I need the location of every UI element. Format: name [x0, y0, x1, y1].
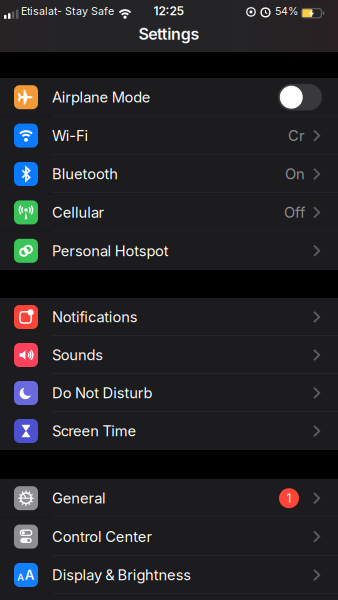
button[interactable]: Sounds [0, 336, 338, 374]
button[interactable]: A [0, 556, 338, 594]
button[interactable]: Notifications [0, 298, 338, 336]
staticText: Personal Hotspot [52, 242, 169, 259]
button[interactable]: General [0, 479, 338, 517]
button[interactable]: Control Center [0, 517, 338, 556]
button[interactable]: Personal Hotspot [0, 232, 338, 270]
staticText: A [25, 567, 35, 583]
button[interactable]: Cellular [0, 193, 338, 232]
button[interactable]: Bluetooth [0, 155, 338, 193]
staticText: Screen Time [52, 422, 136, 440]
staticText: Wi-Fi [52, 127, 89, 144]
button[interactable]: Wi-Fi [0, 116, 338, 155]
staticText: 12:25 [153, 4, 184, 18]
staticText: Do Not Disturb [52, 384, 152, 402]
staticText: General [52, 489, 106, 507]
staticText: Bluetooth [52, 165, 118, 183]
staticText: Airplane Mode [52, 88, 151, 106]
staticText: Sounds [52, 346, 103, 364]
staticText: Display & Brightness [52, 566, 191, 584]
staticText: 54% [275, 5, 298, 17]
button[interactable]: Airplane Mode [278, 84, 322, 110]
staticText: Notifications [52, 308, 138, 326]
button[interactable]: Do Not Disturb [0, 374, 338, 412]
staticText: Off [284, 204, 305, 221]
staticText: Settings [138, 24, 199, 43]
staticText: Cr [288, 127, 305, 144]
staticText: On [285, 165, 305, 183]
staticText: 1 [286, 491, 291, 505]
staticText: Etisalat- Stay Safe [21, 5, 114, 17]
staticText: Control Center [52, 528, 152, 545]
staticText: Cellular [52, 204, 105, 221]
button[interactable]: Screen Time [0, 412, 338, 450]
staticText: A [17, 572, 24, 583]
